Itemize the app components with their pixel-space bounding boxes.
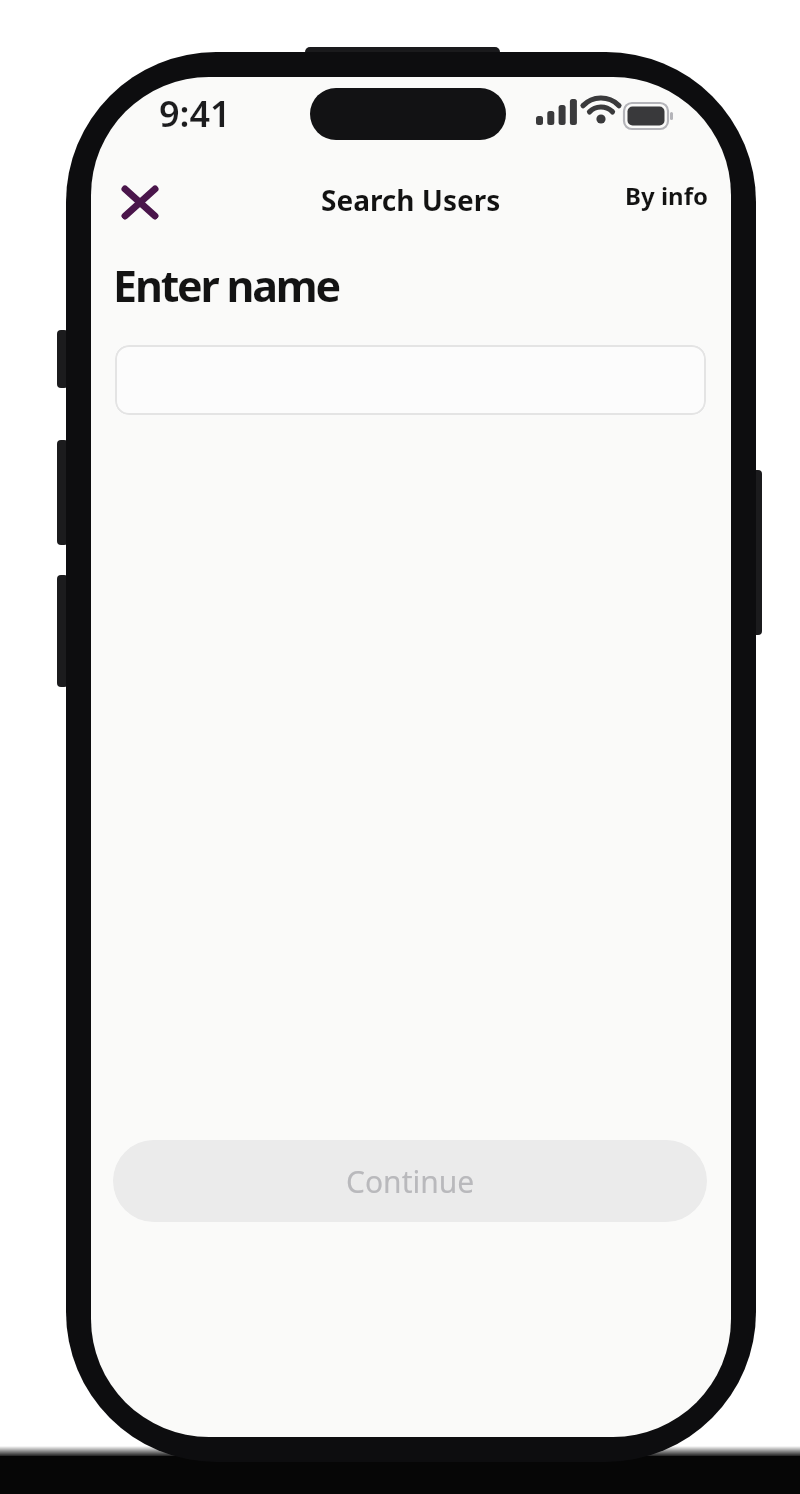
button[interactable]: By info (625, 179, 708, 212)
staticText: Continue (346, 1161, 475, 1202)
button[interactable] (115, 345, 706, 415)
button[interactable]: Continue (113, 1140, 707, 1222)
staticText: 9:41 (159, 89, 231, 138)
staticText: Enter name (113, 256, 340, 315)
staticText: By info (625, 179, 708, 212)
button[interactable] (116, 178, 164, 226)
staticText: Search Users (321, 181, 501, 219)
